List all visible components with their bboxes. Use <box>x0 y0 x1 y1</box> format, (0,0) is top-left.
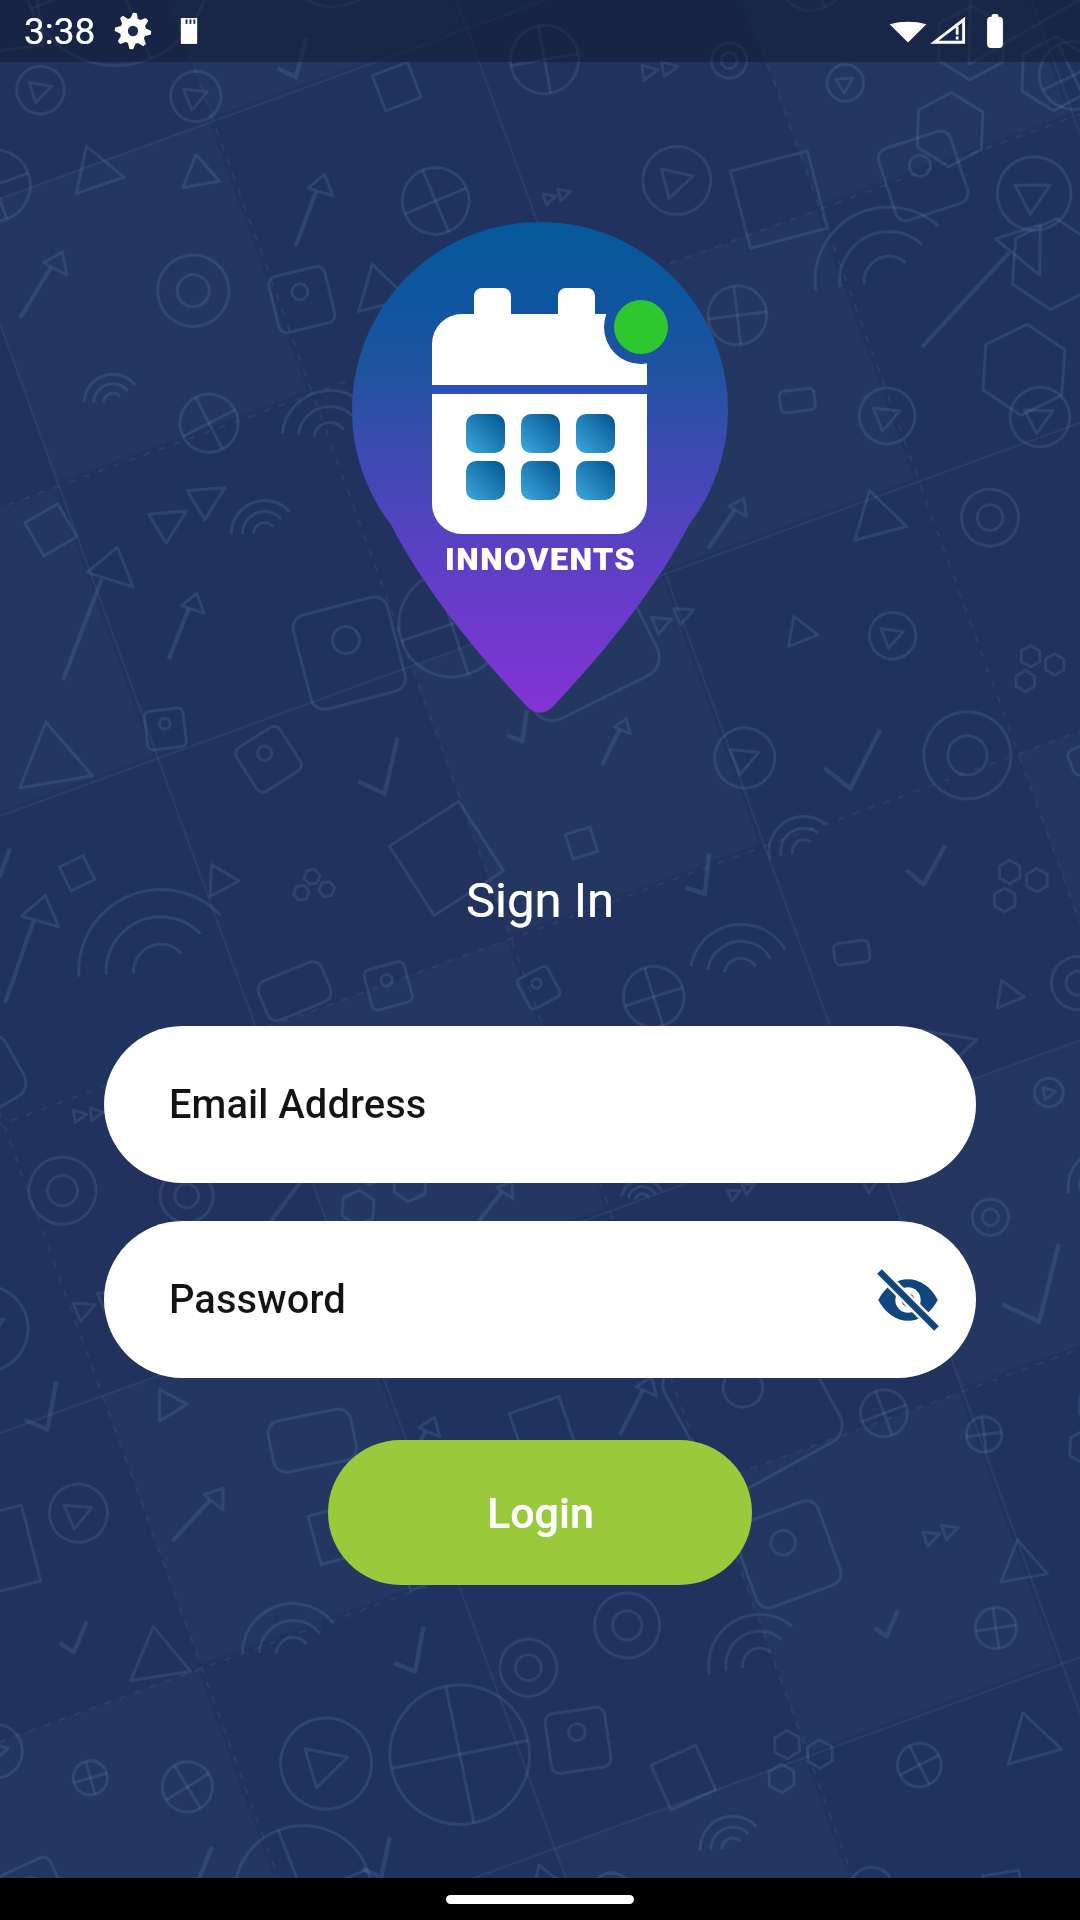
button[interactable]: Login <box>328 1440 752 1585</box>
staticText: Login <box>487 1488 594 1538</box>
button[interactable]: Show password <box>870 1262 946 1338</box>
staticText: Email Address <box>169 1081 427 1128</box>
staticText: Sign In <box>466 872 615 929</box>
button[interactable]: Password <box>104 1221 976 1378</box>
button[interactable]: Email Address <box>104 1026 976 1183</box>
staticText: INNOVENTS <box>445 540 636 578</box>
staticText: Password <box>169 1276 346 1323</box>
staticText: 3:38 <box>24 10 96 53</box>
